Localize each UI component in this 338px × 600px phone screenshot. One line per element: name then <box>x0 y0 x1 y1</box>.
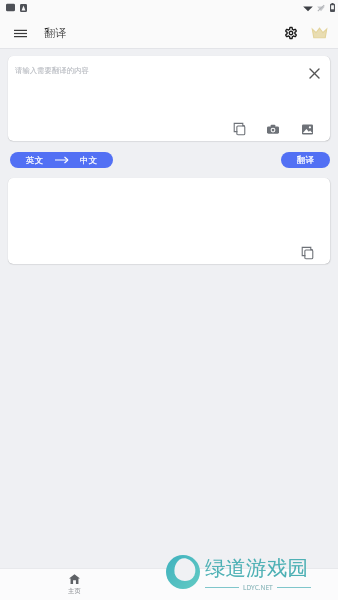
button[interactable]: 主页 <box>0 569 148 600</box>
button[interactable]: Copy <box>228 118 250 140</box>
button[interactable]: Settings <box>278 20 304 46</box>
button[interactable]: 英文 <box>10 152 113 168</box>
button[interactable]: Premium <box>306 20 332 46</box>
staticText: 中文 <box>80 155 97 166</box>
staticText: LDYC.NET <box>243 583 273 592</box>
staticText: 请输入需要翻译的内容 <box>15 66 89 75</box>
staticText: 翻译 <box>297 155 314 166</box>
staticText: 翻译 <box>44 26 66 40</box>
staticText: 主页 <box>68 587 81 595</box>
button[interactable]: Camera <box>262 118 284 140</box>
button[interactable]: Gallery <box>296 118 318 140</box>
staticText: 绿道游戏园 <box>205 555 308 581</box>
button[interactable]: 翻译 <box>281 152 330 168</box>
staticText: 英文 <box>26 155 43 166</box>
button[interactable]: Copy result <box>296 242 318 264</box>
button[interactable]: Clear <box>302 61 326 85</box>
button[interactable]: Menu <box>8 21 32 45</box>
